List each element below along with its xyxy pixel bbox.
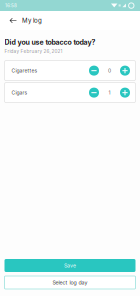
button[interactable]: Select log day	[4, 276, 135, 289]
staticText: Save	[64, 262, 76, 269]
staticText: 16:58	[5, 3, 17, 8]
staticText: Cigars	[11, 90, 27, 96]
button[interactable]: Cigarettes	[4, 61, 135, 81]
button[interactable]: Decrease Cigars	[86, 85, 101, 101]
staticText: Did you use tobacco today?	[4, 38, 95, 46]
button[interactable]: Increase Cigarettes	[117, 63, 132, 79]
staticText: Friday February 26, 2021	[4, 48, 62, 54]
button[interactable]: Cigars	[4, 83, 135, 103]
staticText: 1	[108, 90, 110, 96]
staticText: 0	[108, 68, 111, 74]
staticText: Select log day	[52, 279, 87, 286]
button[interactable]: Save	[4, 259, 135, 272]
button[interactable]: Decrease Cigarettes	[86, 63, 101, 79]
staticText: Cigarettes	[11, 68, 37, 74]
button[interactable]: Back	[4, 12, 22, 29]
button[interactable]: Increase Cigars	[117, 85, 132, 101]
staticText: My log	[22, 17, 42, 24]
